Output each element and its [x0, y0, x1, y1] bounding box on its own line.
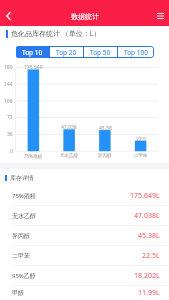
staticText: 22.5L	[142, 251, 160, 261]
button[interactable]: Top 100	[118, 46, 154, 58]
staticText: 175.649	[24, 64, 43, 71]
staticText: 45.38	[99, 125, 112, 132]
staticText: Top 20	[56, 48, 77, 57]
staticText: 库存详情	[10, 174, 34, 182]
staticText: 11.99L	[138, 288, 160, 298]
button[interactable]: Menu	[151, 6, 169, 26]
button[interactable]: Top 20	[50, 46, 83, 58]
staticText: Top 100	[124, 48, 148, 57]
button[interactable]: Back	[0, 6, 16, 26]
staticText: 无水乙醇	[60, 153, 78, 159]
staticText: 175.649L	[130, 191, 160, 201]
staticText: 36	[7, 131, 13, 138]
staticText: 18.202L	[134, 271, 160, 281]
staticText: 甲醇	[12, 289, 24, 297]
staticText: 异丙醇	[98, 153, 112, 159]
staticText: 75%酒精	[12, 192, 36, 200]
staticText: 异丙醇	[12, 232, 30, 240]
staticText: 二甲苯	[12, 252, 30, 260]
staticText: 二甲苯	[134, 153, 148, 159]
staticText: 0	[10, 148, 13, 155]
staticText: 22.5	[136, 136, 146, 143]
staticText: 无水乙醇	[12, 212, 36, 220]
button[interactable]: 75%酒精	[0, 186, 169, 205]
staticText: 45.38L	[138, 231, 160, 241]
button[interactable]: Top 50	[84, 46, 117, 58]
button[interactable]: 异丙醇	[0, 226, 169, 245]
staticText: 47.038	[61, 124, 77, 131]
staticText: 75%酒精	[24, 153, 42, 159]
button[interactable]: Top 10	[16, 46, 49, 58]
button[interactable]: 甲醇	[0, 286, 169, 300]
staticText: 47.038L	[134, 211, 160, 221]
staticText: 144	[4, 81, 13, 88]
staticText: 72	[7, 114, 13, 121]
staticText: Top 10	[22, 48, 43, 57]
button[interactable]: 95%乙醇	[0, 266, 169, 285]
staticText: Top 50	[90, 48, 111, 57]
staticText: 180	[4, 64, 13, 71]
button[interactable]: 无水乙醇	[0, 206, 169, 225]
staticText: 数据统计	[71, 12, 99, 21]
staticText: 危化品库存统计 （单位：L）	[11, 29, 101, 39]
button[interactable]: 二甲苯	[0, 246, 169, 265]
staticText: 108	[4, 98, 13, 105]
staticText: 95%乙醇	[12, 272, 36, 280]
